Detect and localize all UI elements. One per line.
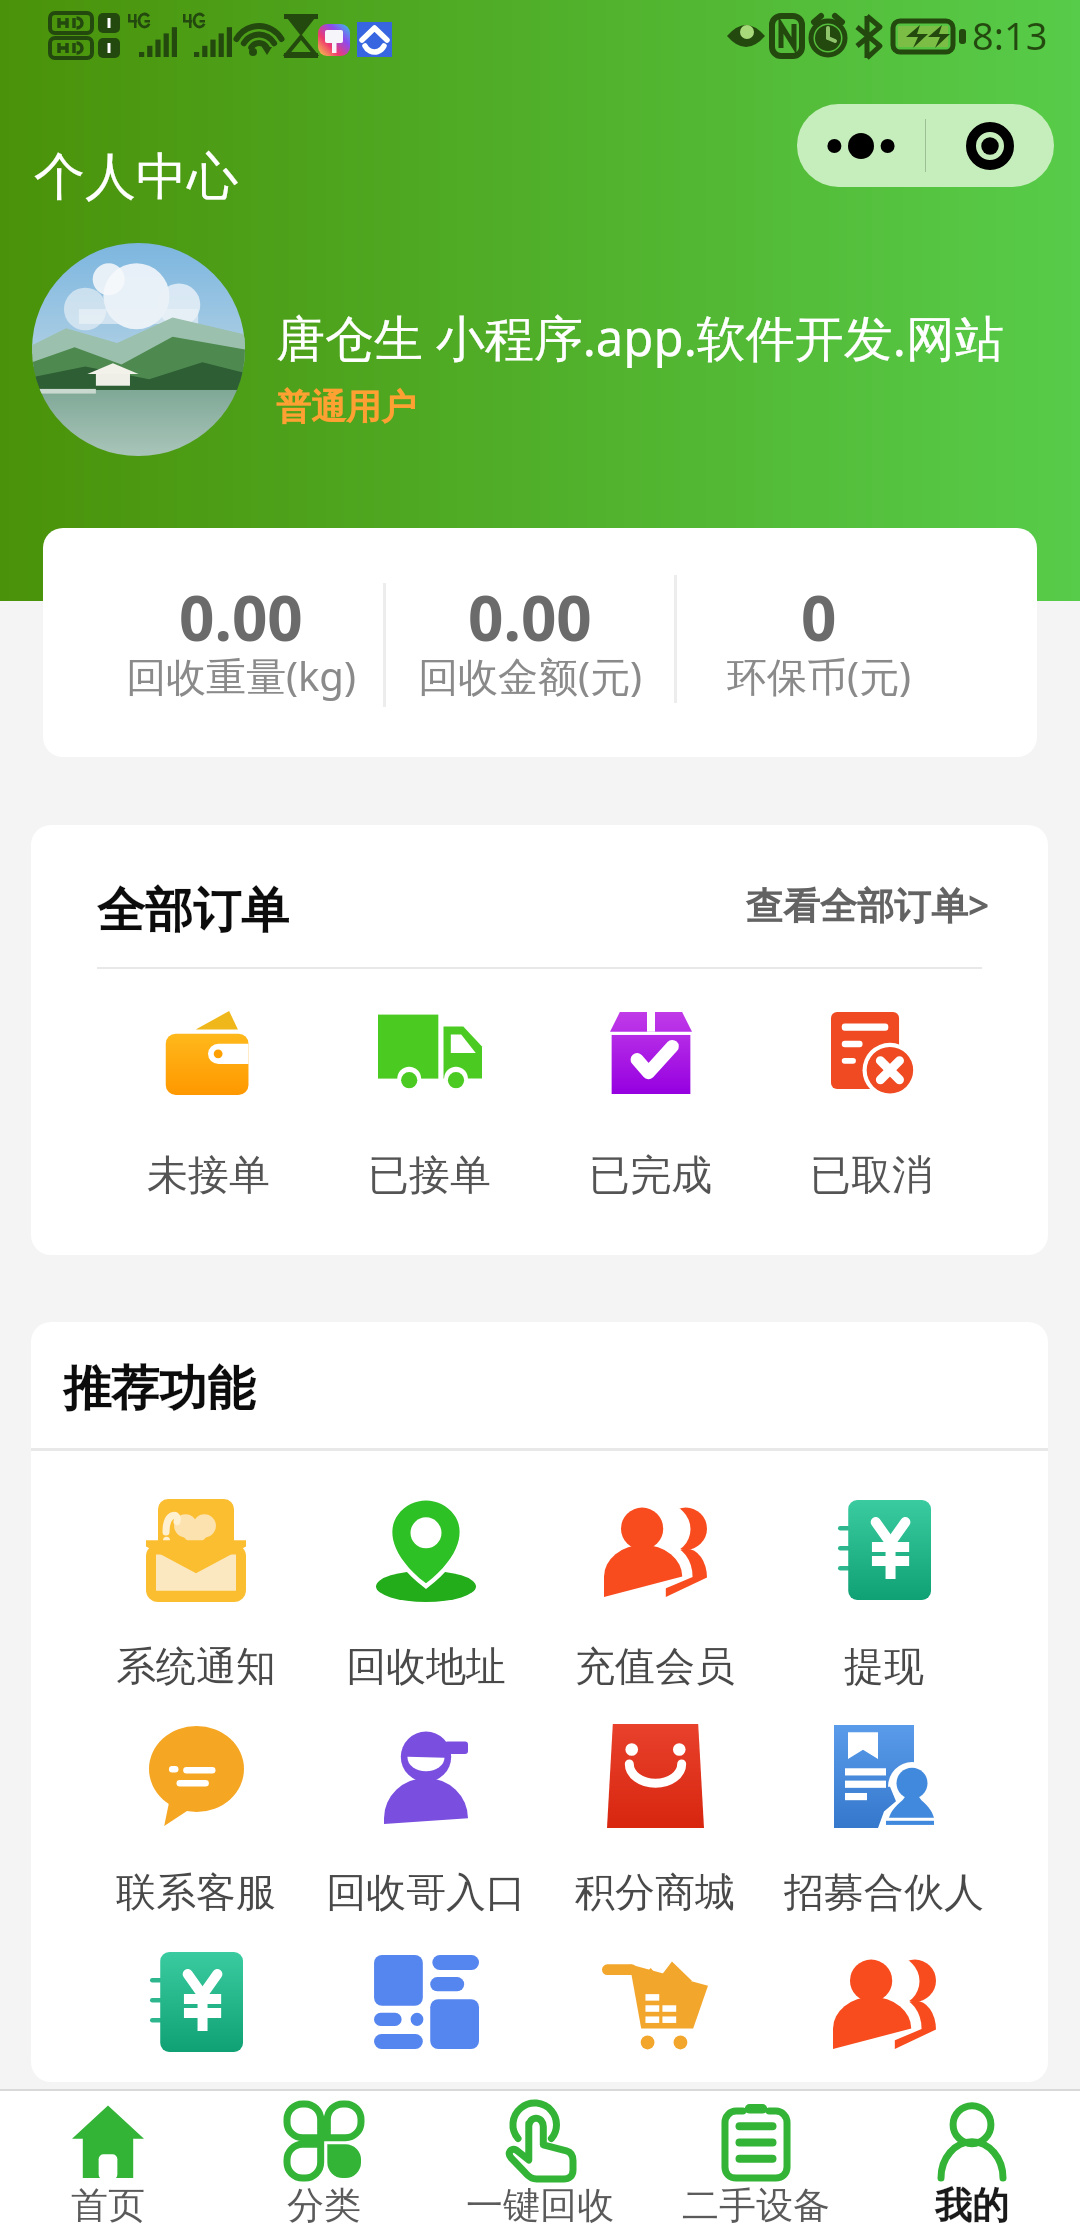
- staticText: 查看全部订单>: [746, 879, 990, 930]
- button[interactable]: 联系客服: [81, 1723, 311, 1949]
- staticText: 0.00: [179, 575, 303, 659]
- staticText: 0: [801, 575, 837, 659]
- button[interactable]: One click recycle: [432, 2091, 648, 2240]
- button[interactable]: [769, 1949, 998, 2082]
- button[interactable]: 查看全部订单>: [746, 879, 990, 930]
- other: Mine: [941, 2104, 1003, 2178]
- staticText: 回收金额(元): [418, 648, 642, 703]
- button[interactable]: Second hand devices: [648, 2091, 864, 2240]
- staticText: 首页: [71, 2182, 145, 2229]
- staticText: 一键回收: [466, 2182, 614, 2229]
- button[interactable]: 积分商城: [540, 1723, 769, 1949]
- button[interactable]: [540, 1949, 769, 2082]
- button[interactable]: Home: [0, 2091, 216, 2240]
- staticText: 个人中心: [34, 145, 238, 209]
- button[interactable]: 未接单: [97, 969, 319, 1255]
- staticText: 招募合伙人: [784, 1867, 984, 1917]
- other: Home: [72, 2104, 144, 2178]
- other: Second hand devices: [723, 2104, 789, 2178]
- button[interactable]: Mine: [864, 2091, 1080, 2240]
- staticText: 回收重量(kg): [126, 648, 356, 703]
- staticText: 唐仓生 小程序.app.软件开发.网站: [276, 304, 1004, 371]
- button[interactable]: [32, 243, 245, 456]
- staticText: 0.00: [468, 575, 592, 659]
- button[interactable]: 提现: [769, 1497, 998, 1723]
- button[interactable]: [311, 1949, 540, 2082]
- button[interactable]: 回收地址: [311, 1497, 540, 1723]
- button[interactable]: 0: [674, 528, 963, 757]
- button[interactable]: Categories: [216, 2091, 432, 2240]
- button[interactable]: 已接单: [319, 969, 540, 1255]
- staticText: 提现: [844, 1641, 924, 1691]
- button[interactable]: 0.00: [385, 528, 674, 757]
- staticText: 推荐功能: [63, 1359, 255, 1419]
- button[interactable]: Close: [926, 104, 1054, 187]
- button[interactable]: 系统通知: [81, 1497, 311, 1723]
- staticText: 积分商城: [575, 1867, 735, 1917]
- staticText: 充值会员: [575, 1641, 735, 1691]
- staticText: 二手设备: [682, 2182, 830, 2229]
- staticText: 已取消: [810, 1150, 933, 1202]
- button[interactable]: 回收哥入口: [311, 1723, 540, 1949]
- other: One click recycle: [507, 2103, 573, 2179]
- button[interactable]: 已完成: [540, 969, 761, 1255]
- staticText: 我的: [935, 2182, 1009, 2229]
- staticText: 8:13: [972, 9, 1048, 61]
- other: Categories: [287, 2104, 361, 2178]
- staticText: 回收哥入口: [326, 1867, 526, 1917]
- staticText: 全部订单: [97, 881, 289, 941]
- staticText: 普通用户: [276, 385, 416, 429]
- staticText: 已接单: [368, 1150, 491, 1202]
- button[interactable]: 0.00: [97, 528, 385, 757]
- button[interactable]: 充值会员: [540, 1497, 769, 1723]
- staticText: 回收地址: [346, 1641, 506, 1691]
- button[interactable]: 招募合伙人: [769, 1723, 998, 1949]
- staticText: 联系客服: [116, 1867, 276, 1917]
- staticText: 系统通知: [116, 1641, 276, 1691]
- staticText: 分类: [287, 2182, 361, 2229]
- staticText: 已完成: [589, 1150, 712, 1202]
- button[interactable]: [81, 1949, 311, 2082]
- button[interactable]: 已取消: [761, 969, 982, 1255]
- staticText: 环保币(元): [727, 648, 911, 703]
- button[interactable]: More: [797, 104, 925, 187]
- staticText: 未接单: [147, 1150, 270, 1202]
